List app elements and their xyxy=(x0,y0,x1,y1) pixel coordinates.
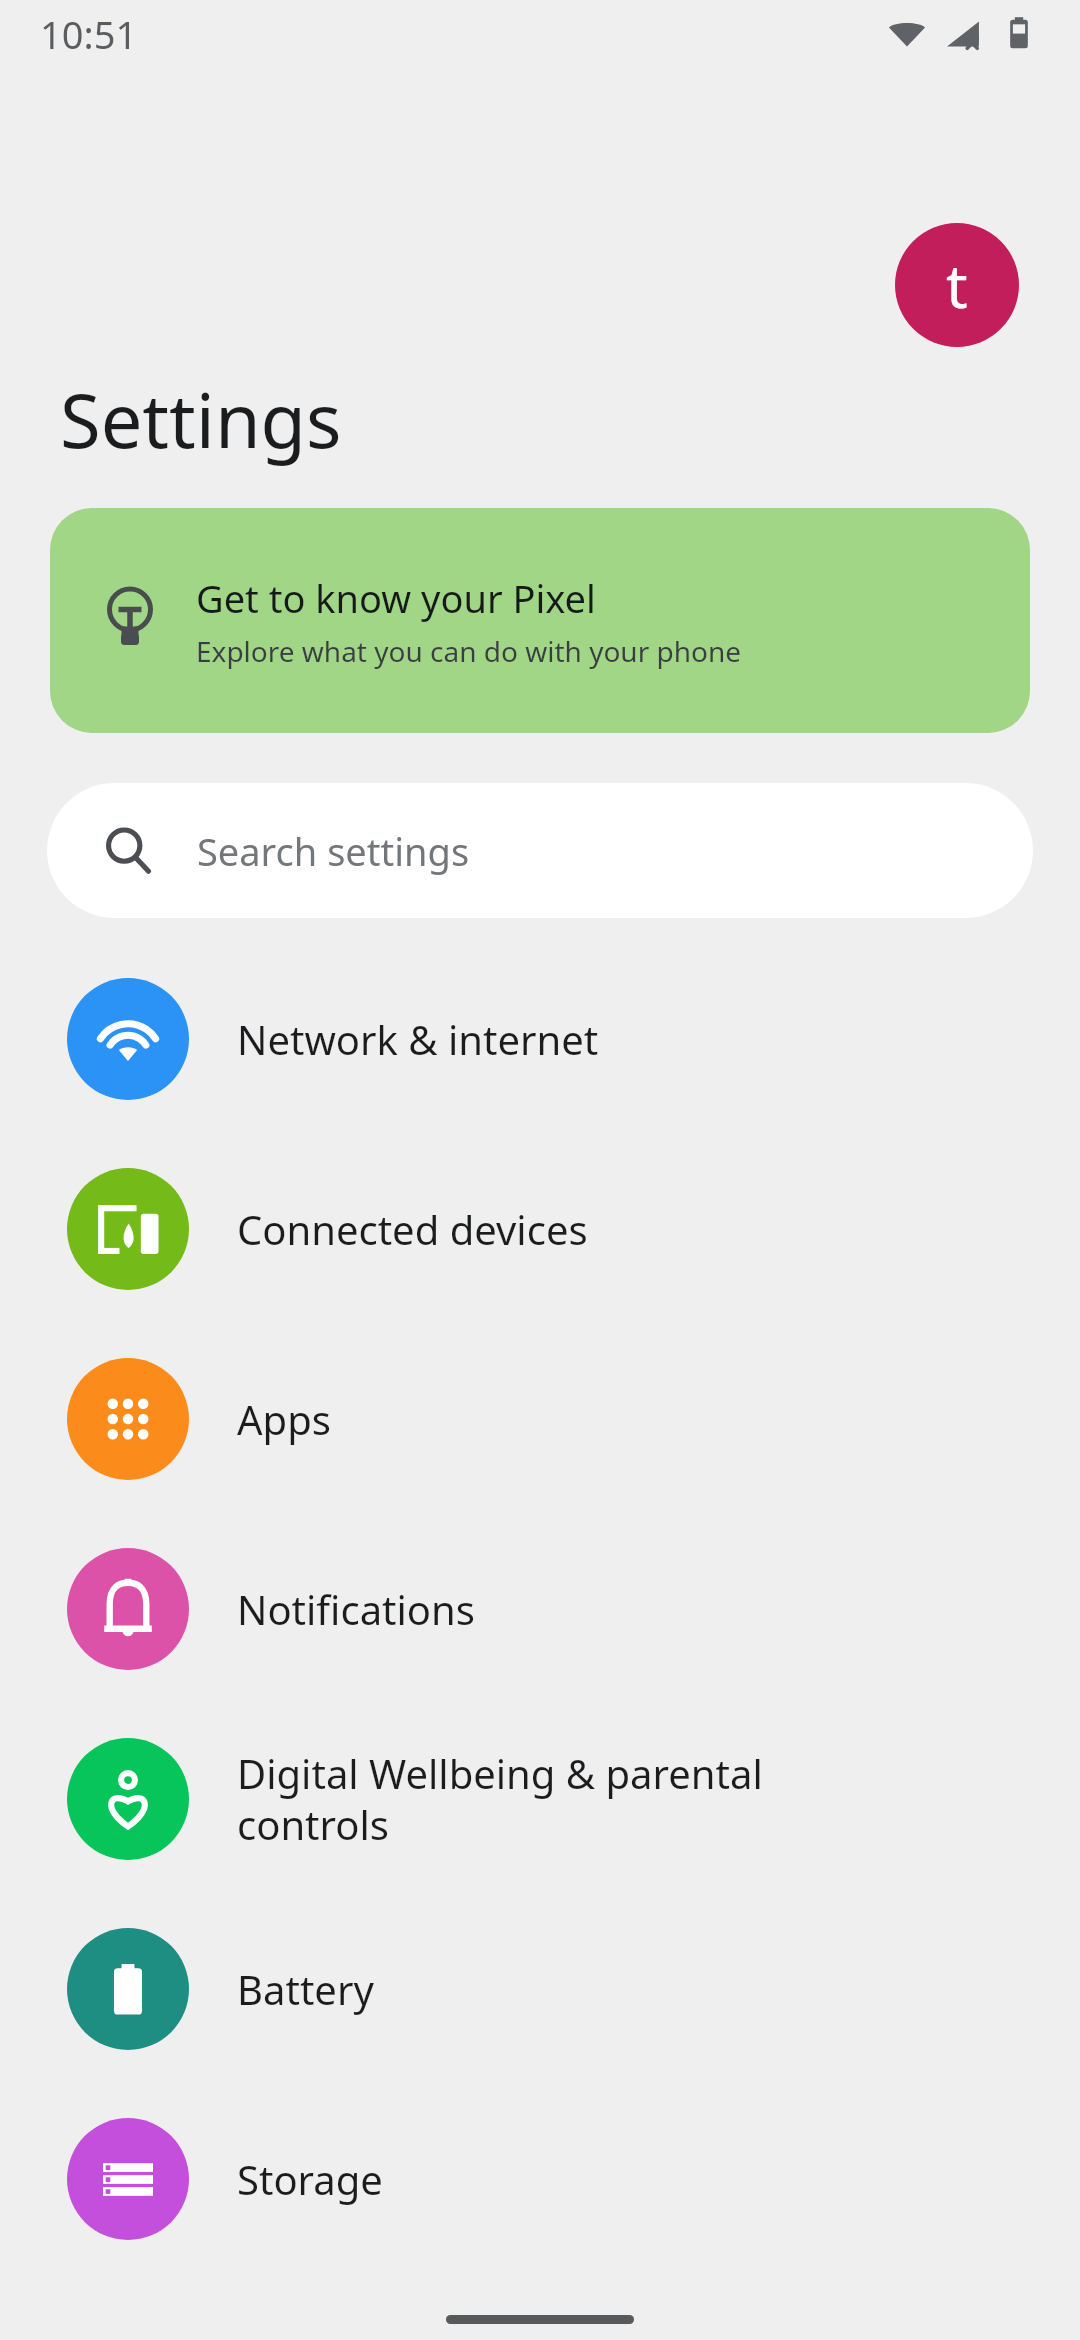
staticText: t xyxy=(946,244,968,326)
staticText: Battery xyxy=(237,1962,374,2016)
staticText: Notifications xyxy=(237,1582,475,1636)
staticText: Explore what you can do with your phone xyxy=(196,632,742,670)
button[interactable]: Digital Wellbeing & parental controls xyxy=(0,1704,1080,1894)
staticText: Get to know your Pixel xyxy=(196,572,596,624)
staticText: Storage xyxy=(237,2152,383,2206)
staticText: Settings xyxy=(60,369,342,470)
staticText: 10:51 xyxy=(40,8,138,60)
button[interactable]: Apps xyxy=(0,1324,1080,1514)
button[interactable]: Connected devices xyxy=(0,1134,1080,1324)
button[interactable]: Get to know your Pixel xyxy=(50,508,1030,733)
staticText: Search settings xyxy=(197,825,470,877)
staticText: Network & internet xyxy=(237,1012,599,1066)
button[interactable]: Network & internet xyxy=(0,944,1080,1134)
button[interactable]: Storage xyxy=(0,2084,1080,2274)
button[interactable]: Notifications xyxy=(0,1514,1080,1704)
staticText: Digital Wellbeing & parental controls xyxy=(237,1746,763,1852)
button[interactable]: Battery xyxy=(0,1894,1080,2084)
button[interactable]: Search settings xyxy=(47,783,1033,918)
staticText: Apps xyxy=(237,1392,331,1446)
button[interactable]: Account xyxy=(895,223,1019,347)
staticText: Connected devices xyxy=(237,1202,588,1256)
